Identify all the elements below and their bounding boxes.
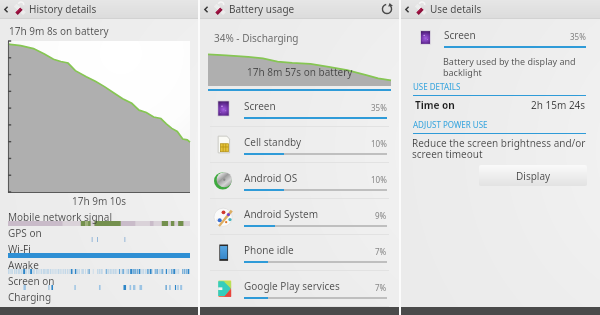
- staticText: Screen: [244, 99, 276, 113]
- staticText: Battery used by the display and backligh…: [443, 55, 576, 78]
- staticText: USE DETAILS: [413, 81, 461, 92]
- staticText: Android OS: [244, 171, 298, 185]
- button[interactable]: Google Play services: [200, 271, 399, 307]
- button[interactable]: Android OS: [200, 163, 399, 199]
- staticText: History details: [29, 2, 97, 16]
- button[interactable]: Back: [402, 4, 412, 14]
- staticText: 35%: [570, 31, 586, 42]
- staticText: 35%: [371, 102, 387, 113]
- button[interactable]: Back: [1, 4, 11, 14]
- staticText: 10%: [371, 138, 387, 149]
- staticText: 17h 9m 10s: [0, 194, 198, 208]
- staticText: Cell standby: [244, 135, 302, 149]
- button[interactable]: GPS on: [0, 226, 198, 242]
- button[interactable]: Mobile network signal: [0, 210, 198, 226]
- staticText: Display: [516, 169, 551, 183]
- staticText: 7%: [375, 246, 387, 257]
- staticText: Mobile network signal: [8, 210, 112, 224]
- staticText: Awake: [8, 258, 39, 272]
- staticText: Battery usage: [229, 2, 295, 16]
- staticText: 17h 9m 8s on battery: [9, 24, 109, 38]
- button[interactable]: Display: [479, 165, 587, 186]
- button[interactable]: Cell standby: [200, 127, 399, 163]
- button[interactable]: Wi-Fi: [0, 242, 198, 258]
- staticText: Charging: [8, 290, 52, 304]
- staticText: Wi-Fi: [8, 242, 31, 256]
- staticText: GPS on: [8, 226, 42, 240]
- staticText: Screen: [444, 28, 476, 42]
- button[interactable]: Screen: [200, 91, 399, 127]
- staticText: Use details: [430, 2, 482, 16]
- staticText: 10%: [371, 174, 387, 185]
- button[interactable]: Back: [201, 4, 211, 14]
- button[interactable]: Awake: [0, 258, 198, 274]
- staticText: 34% - Discharging: [214, 31, 299, 45]
- staticText: 17h 8m 57s on battery: [247, 65, 353, 79]
- staticText: Google Play services: [244, 279, 340, 293]
- staticText: Phone idle: [244, 243, 294, 257]
- button[interactable]: Refresh: [379, 1, 395, 17]
- staticText: Time on: [415, 98, 455, 112]
- button[interactable]: Android System: [200, 199, 399, 235]
- staticText: 7%: [375, 282, 387, 293]
- staticText: Reduce the screen brightness and/or scre…: [412, 136, 586, 161]
- staticText: 2h 15m 24s: [531, 98, 586, 112]
- button[interactable]: Phone idle: [200, 235, 399, 271]
- button[interactable]: Screen on: [0, 274, 198, 290]
- staticText: 9%: [375, 210, 387, 221]
- staticText: Screen on: [8, 274, 55, 288]
- staticText: ADJUST POWER USE: [413, 119, 488, 130]
- button[interactable]: Charging: [0, 290, 198, 306]
- staticText: Android System: [244, 207, 319, 221]
